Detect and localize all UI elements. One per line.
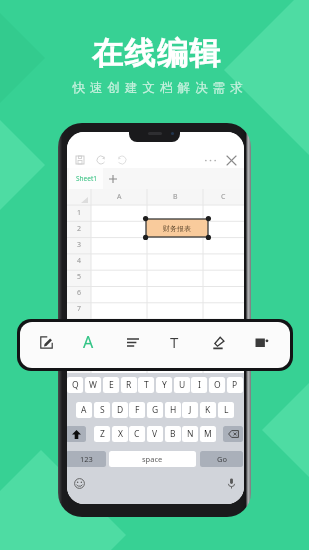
staticText: C [134,428,140,440]
staticText: Y [162,379,167,391]
staticText: 财务报表 [163,224,191,233]
button[interactable]: B [165,426,181,442]
button[interactable]: Z [94,426,110,442]
staticText: 7 [77,304,82,314]
staticText: 2 [77,224,82,234]
button[interactable]: M [200,426,216,442]
button[interactable]: Add sheet [106,168,120,189]
button[interactable]: C [129,426,145,442]
staticText: 在线编辑 [91,34,221,73]
staticText: A [83,331,94,353]
staticText: U [179,379,186,391]
staticText: R [126,379,132,391]
button[interactable]: U [174,377,190,393]
staticText: V [152,428,158,440]
button[interactable]: D [112,402,128,418]
button[interactable]: O [209,377,225,393]
staticText: 123 [80,454,93,464]
button[interactable]: Y [156,377,172,393]
button[interactable]: 123 [67,451,106,467]
button[interactable]: Undo [93,152,109,168]
staticText: 5 [77,272,82,282]
staticText: space [142,454,163,464]
staticText: H [170,404,177,416]
button[interactable]: A [76,402,92,418]
button[interactable]: J [182,402,198,418]
button[interactable]: Q [67,377,83,393]
button[interactable]: F [129,402,145,418]
staticText: M [204,428,212,440]
button[interactable]: H [165,402,181,418]
staticText: O [214,379,221,391]
staticText: P [232,379,238,391]
button[interactable]: Go [200,451,243,467]
button[interactable]: Voice input [223,475,239,491]
staticText: W [89,379,97,391]
button[interactable]: Font color [67,322,110,365]
staticText: F [135,404,140,416]
button[interactable]: Text [153,322,196,365]
staticText: G [152,404,159,416]
staticText: S [100,404,105,416]
button[interactable]: W [85,377,101,393]
button[interactable]: V [147,426,163,442]
staticText: Sheet1 [76,174,97,183]
staticText: E [109,379,114,391]
button[interactable]: Redo [114,152,130,168]
button[interactable]: T [138,377,154,393]
staticText: 快速创建文档解决需求 [70,80,245,96]
button[interactable]: Close [223,152,239,168]
staticText: 4 [77,256,82,266]
button[interactable]: Sheet1 [69,168,103,189]
button[interactable]: More options [202,152,218,168]
button[interactable]: K [200,402,216,418]
button[interactable]: S [94,402,110,418]
button[interactable]: Edit [25,322,68,365]
button[interactable]: Highlighter [197,322,240,365]
button[interactable]: I [191,377,207,393]
button[interactable]: space [109,451,196,467]
button[interactable]: P [227,377,243,393]
staticText: T [170,332,179,352]
staticText: 6 [77,288,82,298]
staticText: Z [100,428,105,440]
staticText: T [144,379,149,391]
staticText: 3 [77,240,82,250]
button[interactable]: E [103,377,119,393]
button[interactable]: Alignment [111,322,154,365]
staticText: Go [217,454,227,464]
staticText: N [187,428,194,440]
staticText: A [81,404,87,416]
staticText: L [224,404,229,416]
staticText: D [117,404,124,416]
staticText: X [118,428,123,440]
button[interactable]: Insert image [240,322,283,365]
button[interactable]: N [182,426,198,442]
staticText: B [170,428,176,440]
staticText: I [198,379,201,391]
staticText: J [189,404,192,416]
button[interactable]: Emoji [71,475,87,491]
button[interactable]: Save [72,152,88,168]
staticText: K [205,404,211,416]
staticText: C [221,192,226,202]
button[interactable]: G [147,402,163,418]
staticText: B [173,192,178,202]
button[interactable]: Backspace [223,426,243,442]
button[interactable]: R [121,377,137,393]
button[interactable]: L [218,402,234,418]
button[interactable]: 财务报表 [146,219,208,237]
button[interactable]: X [112,426,128,442]
staticText: Q [72,379,79,391]
staticText: 1 [77,208,82,218]
button[interactable]: Shift [67,426,86,442]
staticText: A [117,192,122,202]
